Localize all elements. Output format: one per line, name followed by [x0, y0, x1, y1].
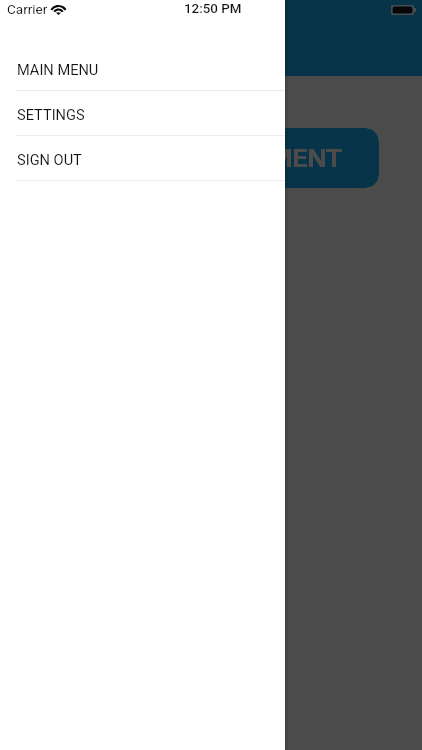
button[interactable]: MAIN MENU [0, 46, 285, 91]
staticText: BOOK APPOINTMENT [81, 142, 343, 173]
button[interactable]: SIGN OUT [0, 136, 285, 181]
button[interactable]: BOOK APPOINTMENT [43, 128, 379, 188]
staticText: Carrier [7, 1, 48, 17]
button[interactable]: SETTINGS [0, 91, 285, 136]
other: Wi-Fi signal [51, 5, 66, 15]
staticText: SIGN OUT [17, 151, 82, 168]
staticText: MAIN MENU [17, 61, 99, 78]
staticText: 12:50 PM [184, 1, 242, 17]
staticText: SETTINGS [17, 106, 85, 123]
other: Battery [391, 5, 416, 15]
